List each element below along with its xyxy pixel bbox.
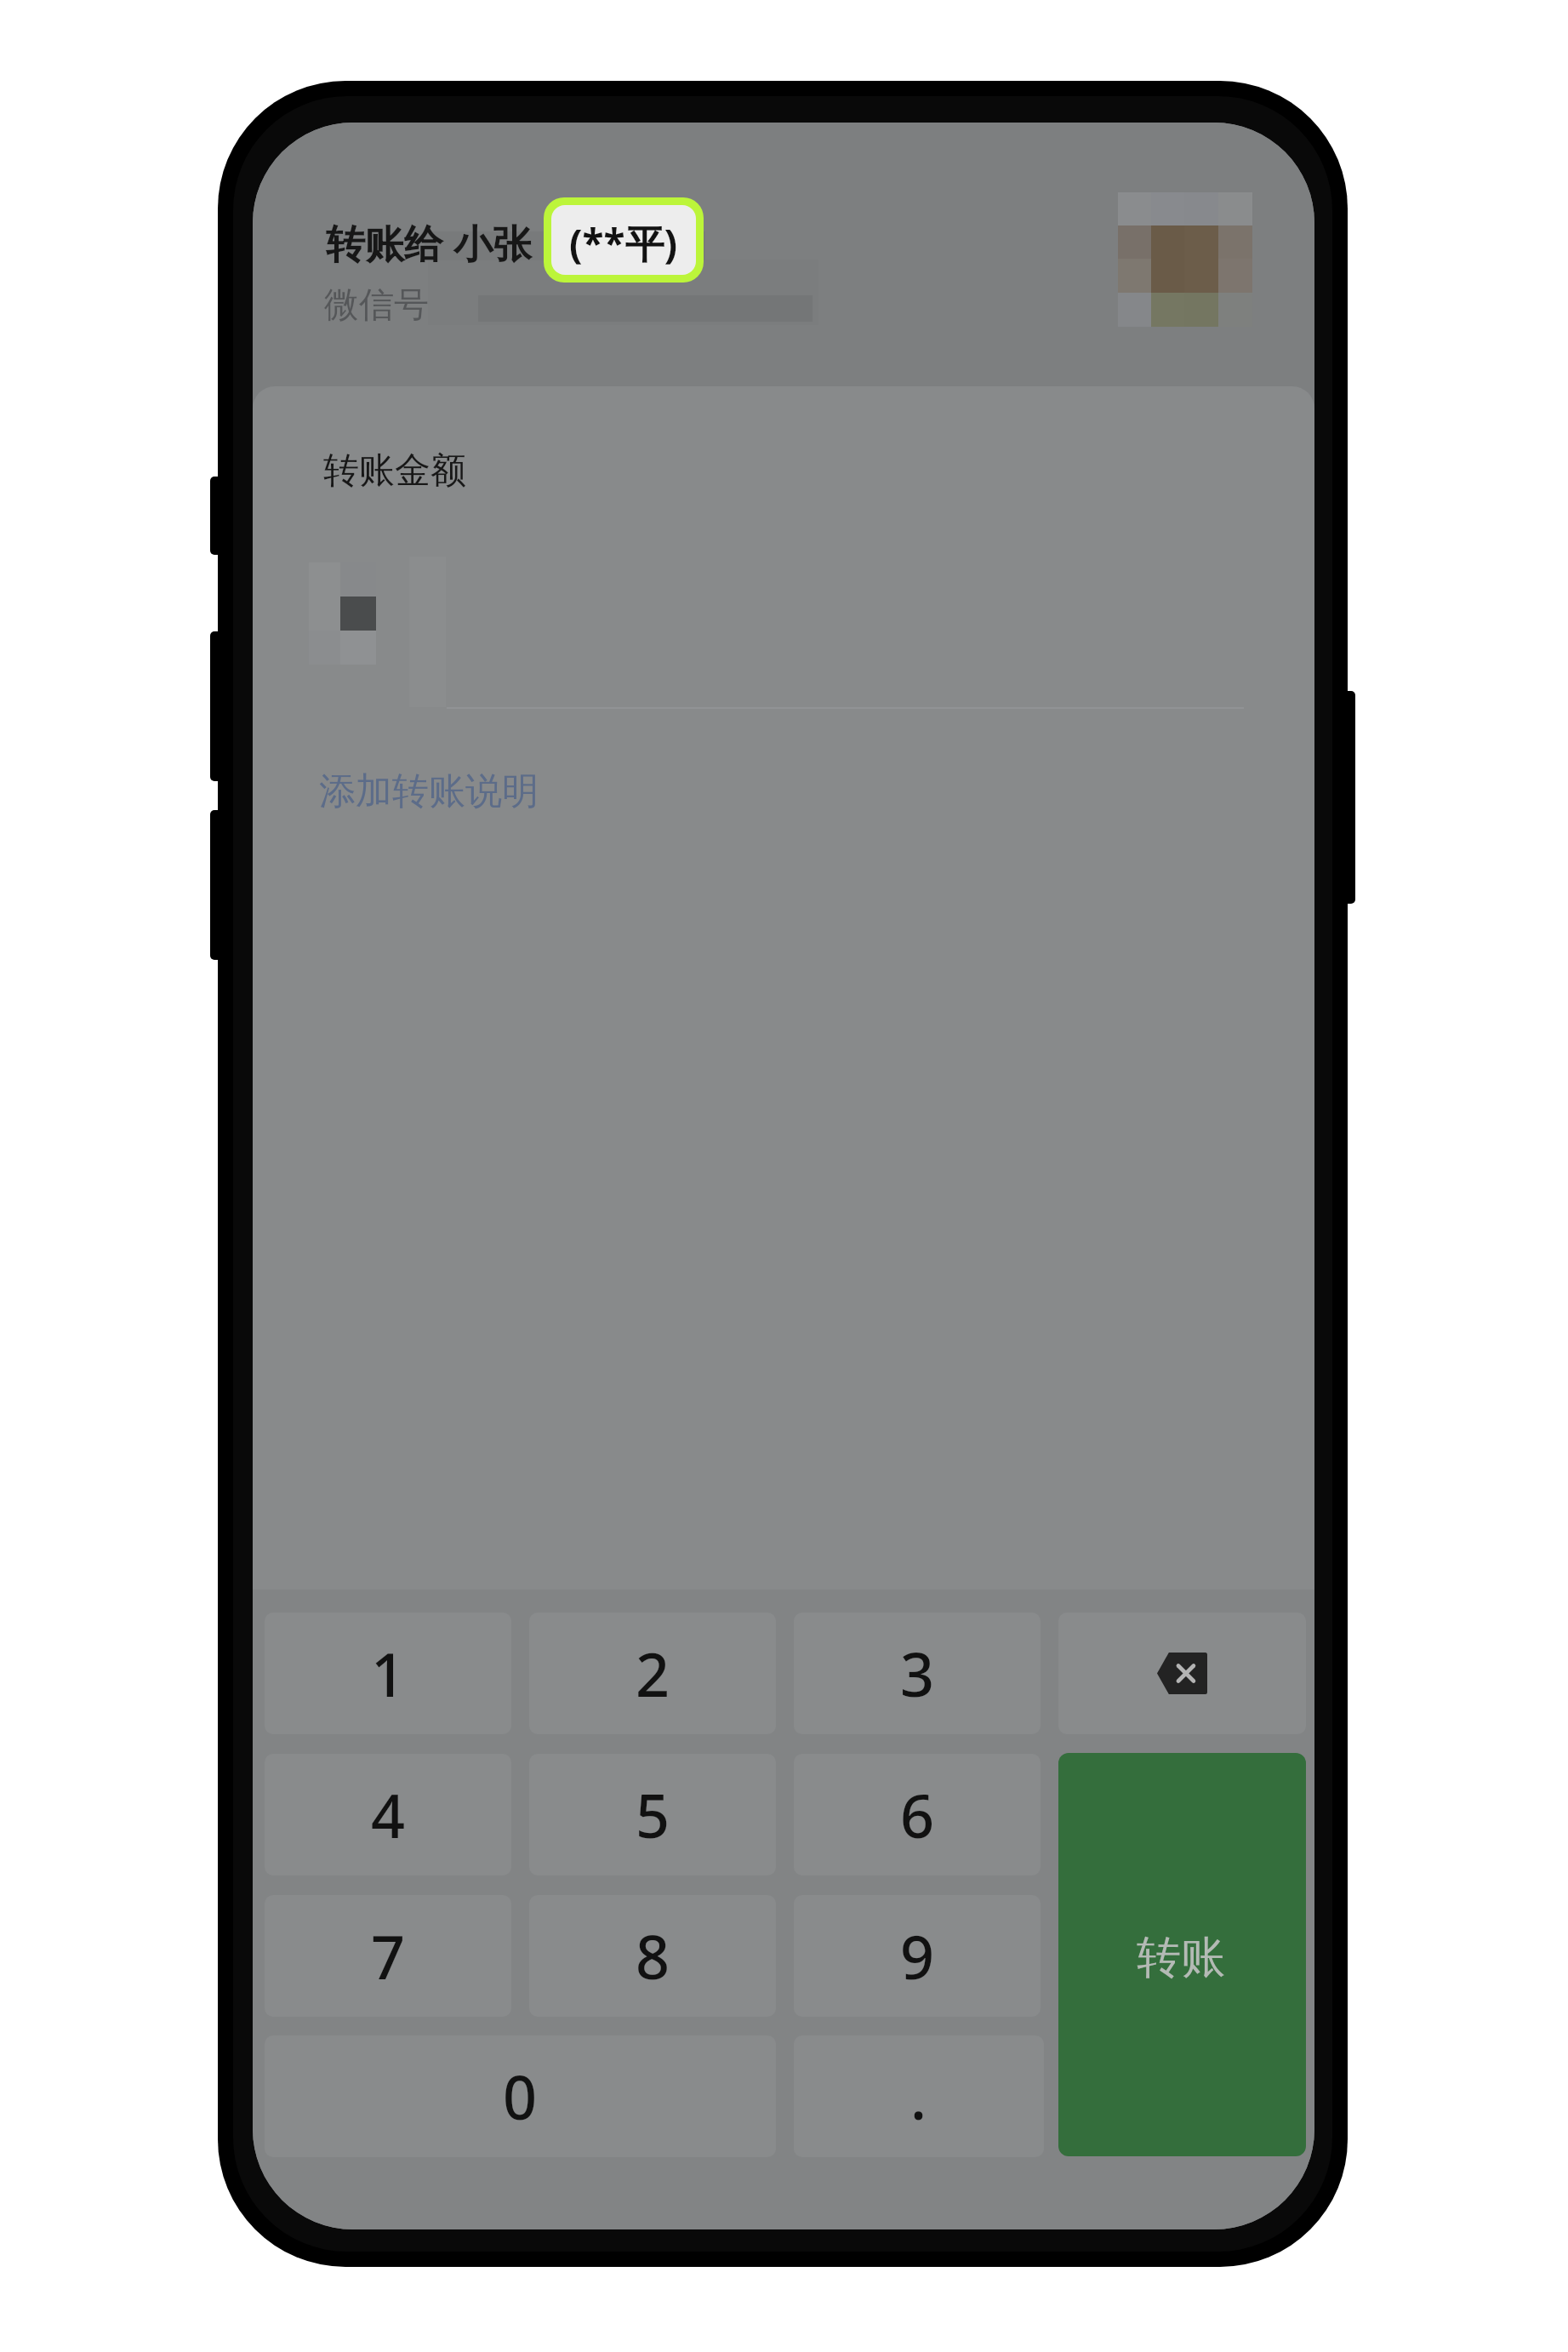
staticText: 添加转账说明 (319, 768, 539, 814)
staticText: 转账 (1137, 1930, 1225, 1986)
button[interactable]: 6 (794, 1754, 1041, 1875)
staticText: (**平) (569, 216, 678, 270)
staticText: 7 (371, 1915, 406, 1996)
staticText: 3 (900, 1633, 935, 1714)
button[interactable]: 5 (529, 1754, 776, 1875)
staticText: 6 (900, 1774, 935, 1855)
button[interactable]: 3 (794, 1613, 1041, 1734)
button[interactable]: 1 (265, 1613, 511, 1734)
staticText: 微信号 (324, 283, 429, 328)
staticText: 4 (371, 1774, 406, 1855)
button[interactable]: 添加转账说明 (319, 754, 557, 827)
button[interactable]: Backspace (1058, 1613, 1306, 1734)
button[interactable]: 8 (529, 1895, 776, 2017)
button[interactable]: . (794, 2035, 1044, 2157)
button[interactable]: 7 (265, 1895, 511, 2017)
staticText: 5 (636, 1774, 670, 1855)
staticText: 0 (503, 2056, 538, 2137)
button[interactable]: 9 (794, 1895, 1041, 2017)
staticText: 1 (371, 1633, 406, 1714)
staticText: 8 (636, 1915, 670, 1996)
button[interactable]: 4 (265, 1754, 511, 1875)
button[interactable]: 0 (265, 2035, 776, 2157)
button[interactable]: 转账 (1058, 1753, 1306, 2156)
staticText: 2 (636, 1633, 670, 1714)
staticText: 转账给 小张 (326, 216, 532, 270)
staticText: 转账金额 (323, 448, 466, 494)
button[interactable]: 2 (529, 1613, 776, 1734)
staticText: 9 (900, 1915, 935, 1996)
staticText: . (910, 2056, 927, 2137)
